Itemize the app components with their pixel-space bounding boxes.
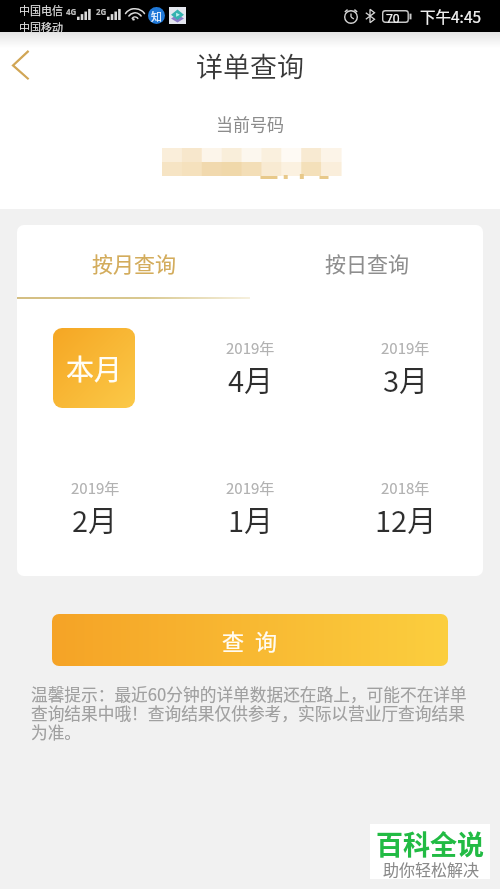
staticText: 当前号码 xyxy=(216,111,284,136)
button[interactable]: 查 xyxy=(52,614,448,666)
staticText: 2019年 xyxy=(226,337,275,359)
staticText: 2018年 xyxy=(381,477,430,499)
staticText: 中国电信 xyxy=(19,2,63,18)
button[interactable]: 本月 xyxy=(53,328,135,408)
staticText: 1月 xyxy=(228,498,274,540)
staticText: 2019年 xyxy=(71,477,120,499)
button[interactable]: 2019年 xyxy=(173,468,328,548)
staticText: 2月 xyxy=(72,498,118,540)
button[interactable]: 按月查询 xyxy=(17,225,250,299)
button[interactable]: 2019年 xyxy=(328,328,483,408)
staticText: 助你轻松解决 xyxy=(383,857,480,880)
staticText: 4月 xyxy=(228,358,274,400)
staticText: 70 xyxy=(386,10,400,23)
button[interactable]: Back xyxy=(0,43,42,87)
staticText: 4G xyxy=(66,6,77,17)
staticText: 2019年 xyxy=(381,337,430,359)
staticText: 按月查询 xyxy=(92,248,176,278)
staticText: 2G xyxy=(96,6,107,17)
staticText: 详单查询 xyxy=(196,46,304,85)
staticText: 百科全说 xyxy=(376,824,484,863)
staticText: 2019年 xyxy=(226,477,275,499)
button[interactable]: 按日查询 xyxy=(250,225,483,299)
button[interactable]: 2019年 xyxy=(17,468,173,548)
staticText: 知 xyxy=(151,8,162,24)
button[interactable]: 2018年 xyxy=(328,468,483,548)
staticText: 查 xyxy=(222,624,245,656)
staticText: 温馨提示：最近60分钟的详单数据还在路上，可能不在详单查询结果中哦！查询结果仅供… xyxy=(31,682,475,744)
staticText: 询 xyxy=(255,624,278,656)
staticText: 下午4:45 xyxy=(420,5,482,27)
staticText: 12月 xyxy=(375,498,437,540)
staticText: 中国移动 xyxy=(19,19,63,35)
button[interactable]: 2019年 xyxy=(173,328,328,408)
staticText: 3月 xyxy=(383,358,429,400)
staticText: 按日查询 xyxy=(325,248,409,278)
staticText: 本月 xyxy=(66,348,123,389)
